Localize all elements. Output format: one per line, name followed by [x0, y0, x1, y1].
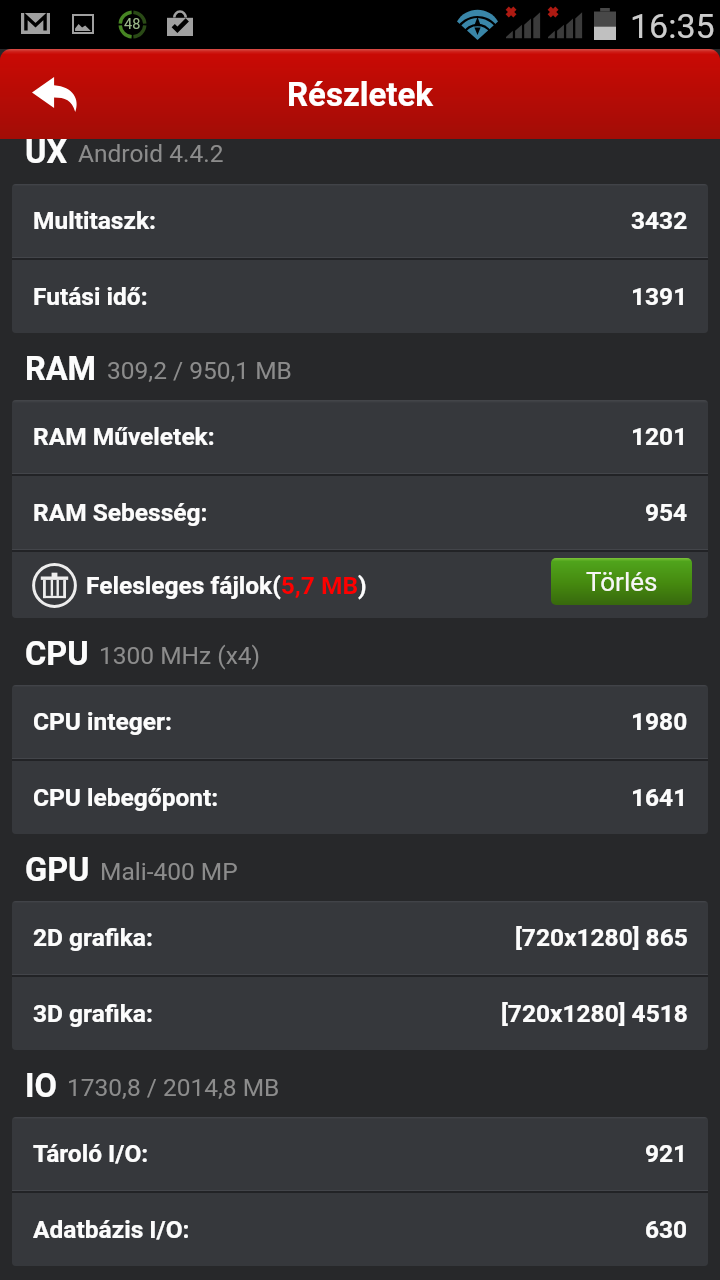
staticText: 3432 [631, 206, 688, 235]
button[interactable]: CPU lebegőpont: [12, 761, 708, 834]
staticText: RAM Műveletek: [33, 422, 215, 451]
staticText: [720x1280] 4518 [501, 999, 688, 1028]
staticText: 309,2 / 950,1 MB [107, 356, 292, 385]
staticText: Mali-400 MP [100, 857, 238, 886]
staticText: GPU [25, 851, 90, 889]
staticText: 16:35 [630, 6, 715, 46]
button[interactable]: RAM Műveletek: [12, 400, 708, 473]
button[interactable]: Futási idő: [12, 260, 708, 333]
staticText: Adatbázis I/O: [33, 1215, 190, 1244]
button[interactable]: RAM Sebesség: [12, 476, 708, 549]
button[interactable]: Back [0, 49, 110, 139]
staticText: 921 [645, 1139, 688, 1168]
staticText: 3D grafika: [33, 999, 153, 1028]
staticText: 2D grafika: [33, 923, 153, 952]
staticText: 1980 [631, 707, 688, 736]
staticText: Törlés [586, 567, 658, 597]
staticText: 630 [645, 1215, 688, 1244]
staticText: 48 [124, 16, 141, 33]
staticText: Részletek [287, 75, 433, 114]
button[interactable]: Multitaszk: [12, 184, 708, 257]
staticText: Felesleges fájlok(5,7 MB) [86, 571, 367, 600]
staticText: RAM [25, 350, 97, 388]
staticText: 1201 [631, 422, 688, 451]
staticText: CPU [25, 635, 89, 673]
staticText: Multitaszk: [33, 206, 156, 235]
staticText: UX [25, 133, 68, 171]
button[interactable]: Adatbázis I/O: [12, 1193, 708, 1266]
button[interactable]: Felesleges fájlok(5,7 MB) [12, 552, 708, 618]
staticText: 1641 [631, 783, 688, 812]
staticText: 954 [645, 498, 688, 527]
staticText: RAM Sebesség: [33, 498, 208, 527]
staticText: 1300 MHz (x4) [99, 641, 261, 670]
staticText: Futási idő: [33, 282, 148, 311]
staticText: [720x1280] 865 [515, 923, 688, 952]
button[interactable]: 2D grafika: [12, 901, 708, 974]
button[interactable]: CPU integer: [12, 685, 708, 758]
staticText: IO [25, 1067, 57, 1105]
button[interactable]: Törlés [551, 558, 692, 605]
button[interactable]: Tároló I/O: [12, 1117, 708, 1190]
staticText: Tároló I/O: [33, 1139, 149, 1168]
staticText: CPU lebegőpont: [33, 783, 219, 812]
staticText: 1730,8 / 2014,8 MB [67, 1073, 280, 1102]
staticText: 1391 [631, 282, 688, 311]
staticText: Android 4.4.2 [78, 139, 224, 168]
staticText: CPU integer: [33, 707, 172, 736]
button[interactable]: 3D grafika: [12, 977, 708, 1050]
